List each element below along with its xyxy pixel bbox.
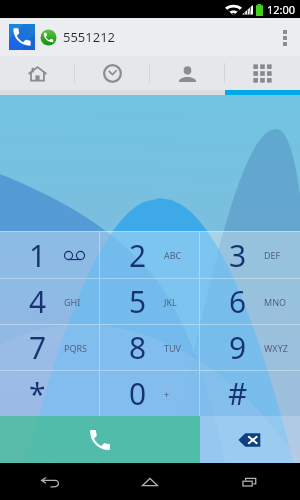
staticText: TUV	[164, 342, 181, 354]
button[interactable]: 6	[200, 279, 300, 324]
button[interactable]: 2	[100, 232, 200, 278]
staticText: 3	[229, 235, 247, 276]
button[interactable]: 3	[200, 232, 300, 278]
button[interactable]: 9	[200, 325, 300, 370]
staticText: JKL	[164, 296, 177, 308]
staticText: 12:00	[267, 2, 296, 17]
button[interactable]: 1	[0, 232, 100, 278]
button[interactable]: More options	[270, 18, 300, 56]
button[interactable]: Recents	[200, 463, 300, 500]
button[interactable]: Back	[0, 463, 100, 500]
staticText: *	[29, 373, 46, 414]
staticText: +	[164, 388, 170, 400]
staticText: 7	[29, 327, 47, 368]
staticText: 1	[29, 235, 47, 276]
staticText: 5551212	[63, 28, 116, 46]
button[interactable]: #	[200, 371, 300, 416]
button[interactable]: 8	[100, 325, 200, 370]
staticText: #	[228, 373, 248, 414]
button[interactable]: 4	[0, 279, 100, 324]
button[interactable]: 5	[100, 279, 200, 324]
staticText: WXYZ	[264, 342, 288, 354]
staticText: 2	[129, 235, 147, 276]
staticText: 6	[229, 281, 247, 322]
staticText: MNO	[264, 296, 287, 308]
staticText: 9	[229, 327, 247, 368]
button[interactable]: 0	[100, 371, 200, 416]
staticText: GHI	[64, 296, 81, 308]
staticText: 8	[129, 327, 147, 368]
staticText: 5	[129, 281, 147, 322]
staticText: 4	[29, 281, 47, 322]
button[interactable]: Speed dial	[0, 56, 75, 90]
button[interactable]: Recents	[75, 56, 150, 90]
button[interactable]: 7	[0, 325, 100, 370]
staticText: PQRS	[64, 342, 88, 354]
button[interactable]: Dialpad	[225, 56, 300, 90]
staticText: DEF	[264, 249, 281, 261]
button[interactable]: Contacts	[150, 56, 225, 90]
button[interactable]: Delete	[200, 416, 300, 463]
staticText: 0	[129, 373, 147, 414]
button[interactable]: *	[0, 371, 100, 416]
button[interactable]: Call	[0, 416, 200, 463]
button[interactable]: Home	[100, 463, 200, 500]
staticText: ABC	[164, 249, 182, 261]
